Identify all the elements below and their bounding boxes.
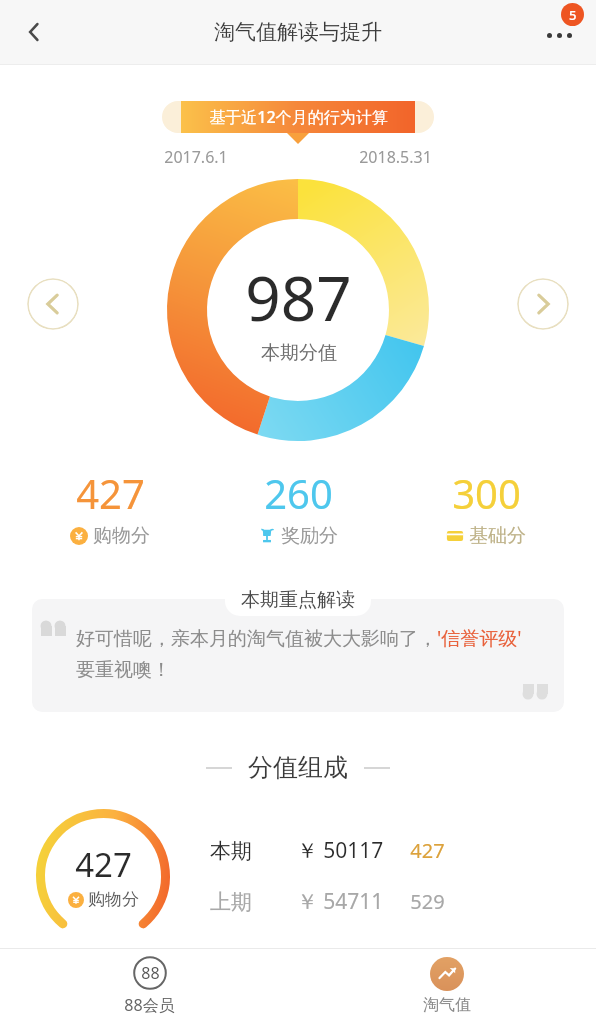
staticText: 基础分 (469, 524, 526, 548)
staticText: ￥ 54711 (284, 887, 396, 916)
staticText: 淘气值解读与提升 (214, 19, 382, 45)
staticText: 本期分值 (261, 341, 337, 365)
staticText: 260 (264, 466, 333, 520)
staticText: 基于近12个月的行为计算 (209, 106, 388, 128)
button[interactable]: 427 (16, 466, 204, 548)
button[interactable]: Next period (517, 278, 569, 330)
button[interactable]: 淘气值 (298, 948, 596, 1024)
staticText: 好可惜呢，亲本月的淘气值被大大影响了，'信誉评级' 要重视噢！ (76, 625, 538, 682)
staticText: 2017.6.1 (164, 146, 228, 168)
staticText: 427 (76, 466, 145, 520)
button[interactable]: Previous period (27, 278, 79, 330)
staticText: 本期重点解读 (241, 588, 355, 612)
staticText: 529 (410, 888, 445, 915)
staticText: 300 (452, 466, 521, 520)
staticText: 427 (410, 837, 445, 864)
button[interactable]: 260 (204, 466, 392, 548)
button[interactable]: Back (10, 8, 58, 56)
staticText: 5 (569, 6, 577, 24)
staticText: 奖励分 (281, 524, 338, 548)
staticText: 88 (141, 962, 160, 984)
staticText: 2018.5.31 (359, 146, 432, 168)
staticText: 427 (75, 842, 132, 887)
staticText: 购物分 (88, 889, 139, 910)
staticText: 本期 (198, 838, 264, 864)
staticText: 分值组成 (248, 752, 348, 783)
staticText: 上期 (198, 889, 264, 915)
staticText: ￥ 50117 (284, 836, 396, 865)
staticText: 88会员 (124, 994, 175, 1016)
staticText: 987 (245, 255, 352, 339)
staticText: 淘气值 (423, 995, 471, 1015)
button[interactable]: 88 (0, 948, 298, 1024)
staticText: 购物分 (93, 524, 150, 548)
button[interactable]: 300 (392, 466, 580, 548)
button[interactable]: More options (532, 5, 586, 59)
